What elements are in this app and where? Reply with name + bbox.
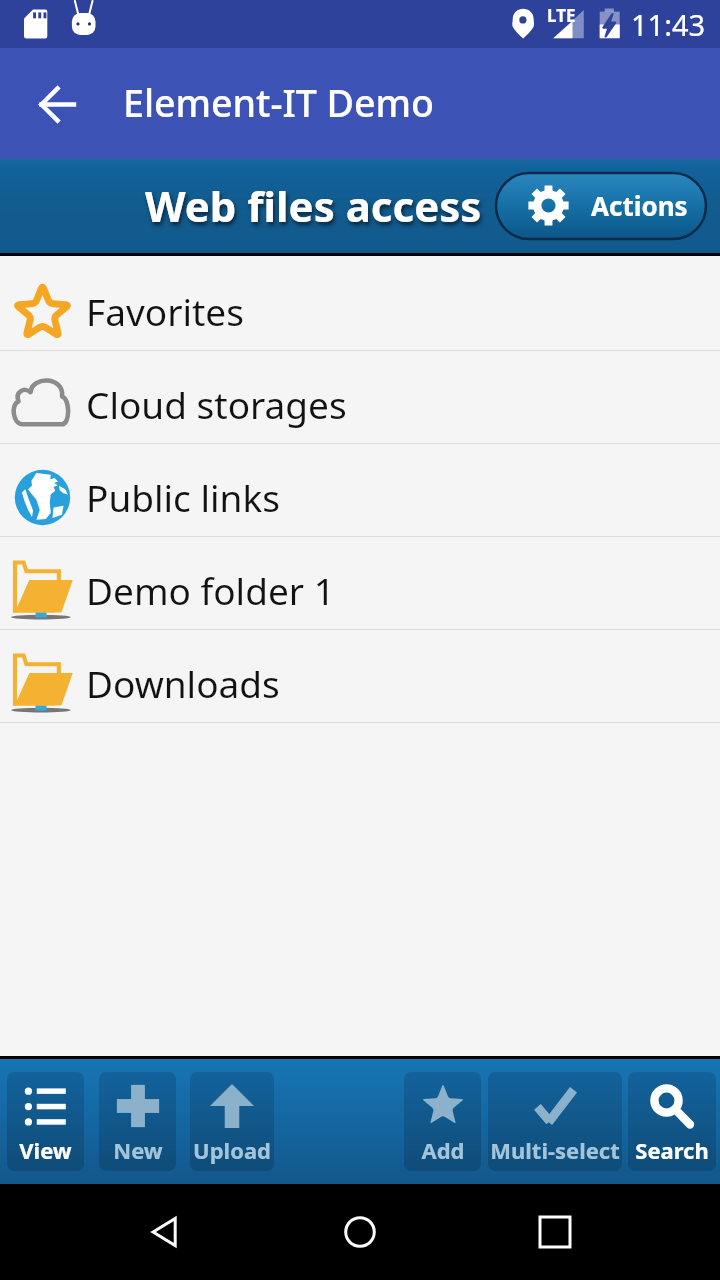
staticText: Favorites — [86, 286, 244, 336]
staticText: Element-IT Demo — [123, 77, 434, 128]
button[interactable]: Public links — [0, 457, 720, 536]
button[interactable]: Back — [22, 70, 90, 138]
button[interactable]: Multi-select — [488, 1072, 622, 1171]
button[interactable]: Back — [135, 1202, 195, 1262]
button[interactable]: Search — [628, 1072, 716, 1171]
button[interactable]: Upload — [190, 1072, 274, 1171]
staticText: LTE — [547, 4, 576, 27]
staticText: Public links — [86, 472, 280, 522]
staticText: New — [113, 1135, 163, 1165]
button[interactable]: Home — [330, 1202, 390, 1262]
staticText: Search — [635, 1135, 709, 1165]
button[interactable]: Favorites — [0, 271, 720, 350]
staticText: Add — [421, 1135, 465, 1165]
button[interactable]: Add — [404, 1072, 481, 1171]
staticText: 11:43 — [631, 5, 706, 44]
staticText: Actions — [591, 188, 688, 223]
staticText: Multi-select — [490, 1135, 620, 1165]
button[interactable]: View — [7, 1072, 84, 1171]
button[interactable]: Cloud storages — [0, 364, 720, 443]
button[interactable]: Actions — [496, 173, 706, 239]
staticText: Cloud storages — [86, 379, 347, 429]
staticText: Downloads — [86, 658, 280, 708]
staticText: Demo folder 1 — [86, 565, 335, 615]
button[interactable]: New — [99, 1072, 176, 1171]
staticText: Web files access — [145, 177, 482, 234]
button[interactable]: Downloads — [0, 643, 720, 722]
button[interactable]: Demo folder 1 — [0, 550, 720, 629]
button[interactable]: Recents — [525, 1202, 585, 1262]
staticText: Upload — [193, 1135, 271, 1165]
staticText: View — [19, 1135, 72, 1165]
